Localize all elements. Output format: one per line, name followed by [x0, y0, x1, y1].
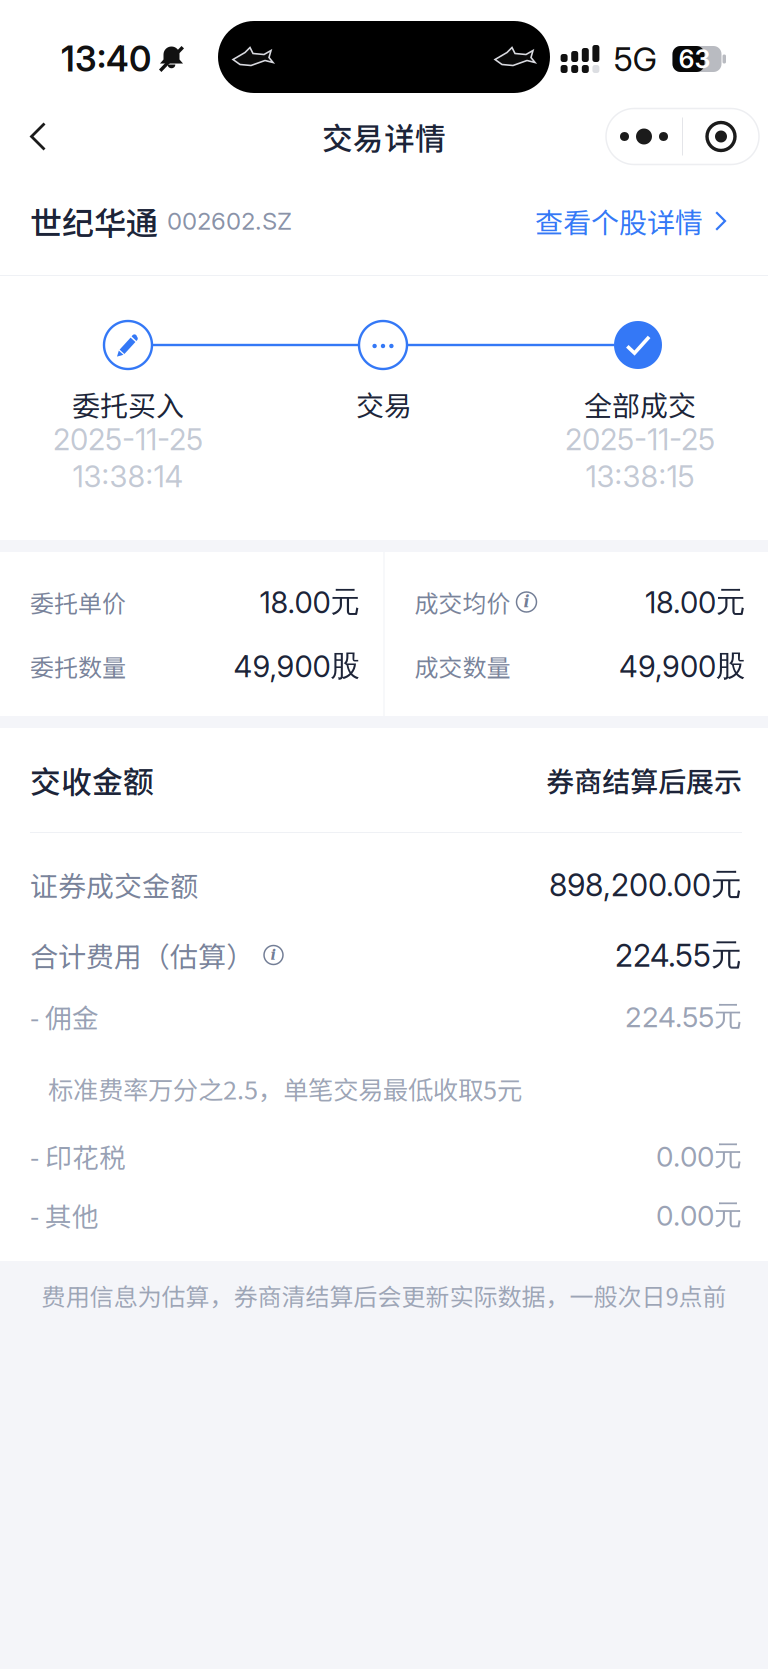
staticText: 交易	[356, 384, 412, 424]
staticText: 0.00元	[656, 1197, 742, 1233]
staticText: 委托买入	[72, 384, 184, 424]
staticText: 49,900股	[233, 647, 359, 684]
staticText: 成交数量	[414, 649, 510, 683]
staticText: 224.55元	[615, 936, 742, 974]
staticText: 13:38:14	[72, 459, 183, 494]
staticText: 63	[678, 44, 710, 74]
staticText: i	[523, 592, 529, 611]
staticText: - 其他	[30, 1196, 99, 1234]
button[interactable]: 返回	[0, 108, 70, 165]
staticText: 5G	[613, 39, 657, 79]
staticText: 费用信息为估算，券商清结算后会更新实际数据，一般次日9点前	[41, 1278, 726, 1313]
staticText: 合计费用（估算）	[30, 935, 254, 975]
staticText: 查看个股详情	[535, 201, 703, 241]
staticText: 898,200.00元	[549, 865, 742, 904]
staticText: 2025-11-25	[565, 422, 715, 457]
staticText: 全部成交	[584, 384, 696, 424]
staticText: 0.00元	[656, 1138, 742, 1174]
staticText: 标准费率万分之2.5，单笔交易最低收取5元	[48, 1070, 522, 1107]
staticText: 49,900股	[619, 647, 745, 684]
staticText: 成交均价	[414, 585, 510, 619]
staticText: 券商结算后展示	[546, 760, 742, 800]
button[interactable]: 查看个股详情	[535, 187, 726, 255]
staticText: i	[270, 946, 276, 963]
button[interactable]: 关闭	[683, 108, 759, 164]
staticText: 224.55元	[625, 999, 742, 1034]
button[interactable]: 更多	[606, 108, 682, 164]
staticText: 交易详情	[322, 114, 446, 159]
staticText: - 佣金	[30, 997, 99, 1036]
staticText: 13:38:15	[585, 459, 694, 494]
staticText: 交收金额	[30, 758, 154, 802]
staticText: 002602.SZ	[167, 206, 292, 235]
staticText: 18.00元	[645, 583, 745, 620]
staticText: 18.00元	[259, 583, 359, 620]
staticText: 世纪华通	[30, 198, 158, 244]
staticText: - 印花税	[30, 1137, 126, 1175]
staticText: 委托单价	[30, 585, 126, 619]
staticText: 2025-11-25	[53, 422, 203, 457]
staticText: 委托数量	[30, 649, 126, 683]
staticText: 证券成交金额	[30, 864, 198, 905]
staticText: 13:40	[61, 38, 151, 80]
